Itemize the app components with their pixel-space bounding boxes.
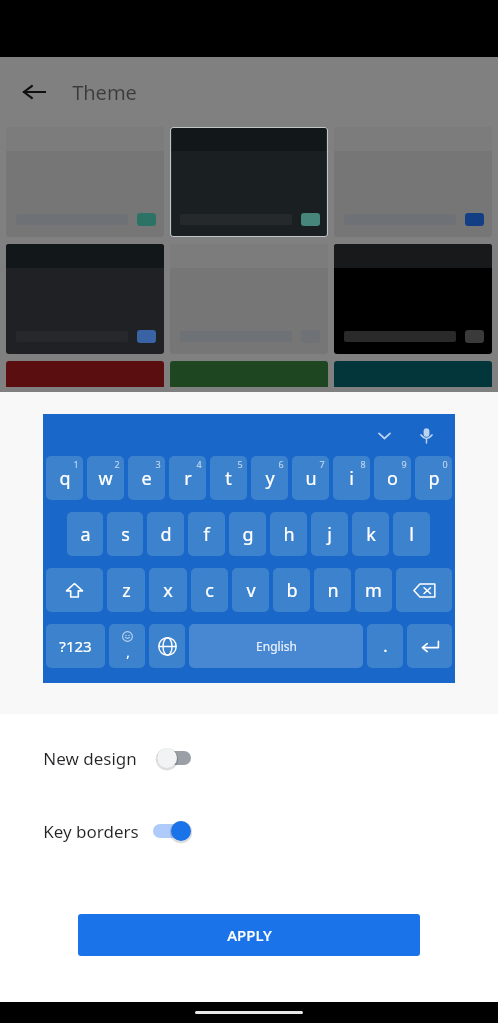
button[interactable]: t — [210, 456, 247, 500]
staticText: English — [256, 638, 297, 654]
staticText: b — [286, 578, 298, 603]
button[interactable]: o — [374, 456, 411, 500]
button[interactable]: APPLY — [78, 914, 420, 956]
button[interactable]: f — [188, 512, 225, 556]
staticText: s — [121, 522, 130, 547]
staticText: v — [246, 578, 256, 603]
staticText: m — [365, 578, 382, 603]
staticText: 0 — [442, 458, 448, 470]
button[interactable]: q — [46, 456, 83, 500]
button[interactable]: z — [107, 568, 145, 612]
staticText: 8 — [360, 458, 366, 470]
button[interactable]: g — [229, 512, 266, 556]
staticText: u — [305, 466, 317, 491]
staticText: , — [126, 643, 130, 661]
staticText: h — [283, 522, 295, 547]
staticText: 6 — [278, 458, 284, 470]
button[interactable]: Key borders — [0, 811, 498, 851]
staticText: e — [141, 466, 152, 491]
button[interactable]: i — [333, 456, 370, 500]
staticText: l — [409, 522, 414, 547]
staticText: Key borders — [43, 820, 139, 843]
staticText: d — [160, 522, 172, 547]
button[interactable]: n — [314, 568, 351, 612]
button[interactable]: k — [352, 512, 389, 556]
button[interactable] — [334, 127, 492, 237]
button[interactable]: p — [415, 456, 452, 500]
button[interactable] — [170, 244, 328, 354]
button[interactable]: u — [292, 456, 329, 500]
staticText: g — [242, 522, 254, 547]
button[interactable]: Voice input — [409, 418, 443, 452]
staticText: ?123 — [59, 636, 92, 656]
button[interactable] — [170, 127, 328, 237]
staticText: APPLY — [227, 925, 272, 945]
staticText: f — [203, 522, 210, 547]
staticText: k — [366, 522, 376, 547]
staticText: 9 — [401, 458, 407, 470]
button[interactable] — [6, 244, 164, 354]
staticText: j — [327, 522, 332, 547]
staticText: Theme — [72, 79, 137, 106]
button[interactable]: v — [232, 568, 269, 612]
button[interactable]: x — [149, 568, 187, 612]
button[interactable]: j — [311, 512, 348, 556]
staticText: t — [225, 466, 232, 491]
button[interactable]: b — [273, 568, 310, 612]
staticText: y — [265, 466, 275, 491]
button[interactable]: w — [87, 456, 124, 500]
staticText: q — [59, 466, 71, 491]
button[interactable]: . — [367, 624, 403, 668]
button[interactable]: Shift — [46, 568, 103, 612]
button[interactable] — [6, 127, 164, 237]
button[interactable]: l — [393, 512, 430, 556]
button[interactable]: m — [355, 568, 392, 612]
staticText: 7 — [319, 458, 325, 470]
staticText: x — [163, 578, 173, 603]
button[interactable]: Change language — [149, 624, 185, 668]
button[interactable]: Enter — [407, 624, 452, 668]
staticText: w — [98, 466, 113, 491]
staticText: 4 — [196, 458, 202, 470]
staticText: c — [205, 578, 214, 603]
staticText: n — [327, 578, 339, 603]
staticText: 1 — [73, 458, 79, 470]
button[interactable]: Emoji and comma — [109, 624, 145, 668]
staticText: i — [349, 466, 354, 491]
button[interactable] — [334, 244, 492, 354]
button[interactable]: Backspace — [396, 568, 452, 612]
button[interactable]: h — [270, 512, 307, 556]
button[interactable]: Collapse suggestions — [367, 418, 401, 452]
staticText: z — [122, 578, 131, 603]
button[interactable]: s — [107, 512, 143, 556]
staticText: New design — [43, 747, 137, 770]
staticText: 2 — [114, 458, 120, 470]
button[interactable]: New design — [0, 738, 498, 778]
staticText: p — [428, 466, 440, 491]
button[interactable]: English — [189, 624, 363, 668]
button[interactable]: r — [169, 456, 206, 500]
staticText: 3 — [155, 458, 161, 470]
staticText: o — [387, 466, 398, 491]
button[interactable]: e — [128, 456, 165, 500]
button[interactable]: Back — [12, 70, 56, 114]
button[interactable]: a — [67, 512, 103, 556]
button[interactable]: c — [191, 568, 228, 612]
staticText: . — [383, 635, 388, 657]
button[interactable]: y — [251, 456, 288, 500]
staticText: r — [184, 466, 192, 491]
staticText: 5 — [237, 458, 243, 470]
button[interactable]: ?123 — [46, 624, 105, 668]
button[interactable]: d — [147, 512, 184, 556]
staticText: a — [80, 522, 91, 547]
